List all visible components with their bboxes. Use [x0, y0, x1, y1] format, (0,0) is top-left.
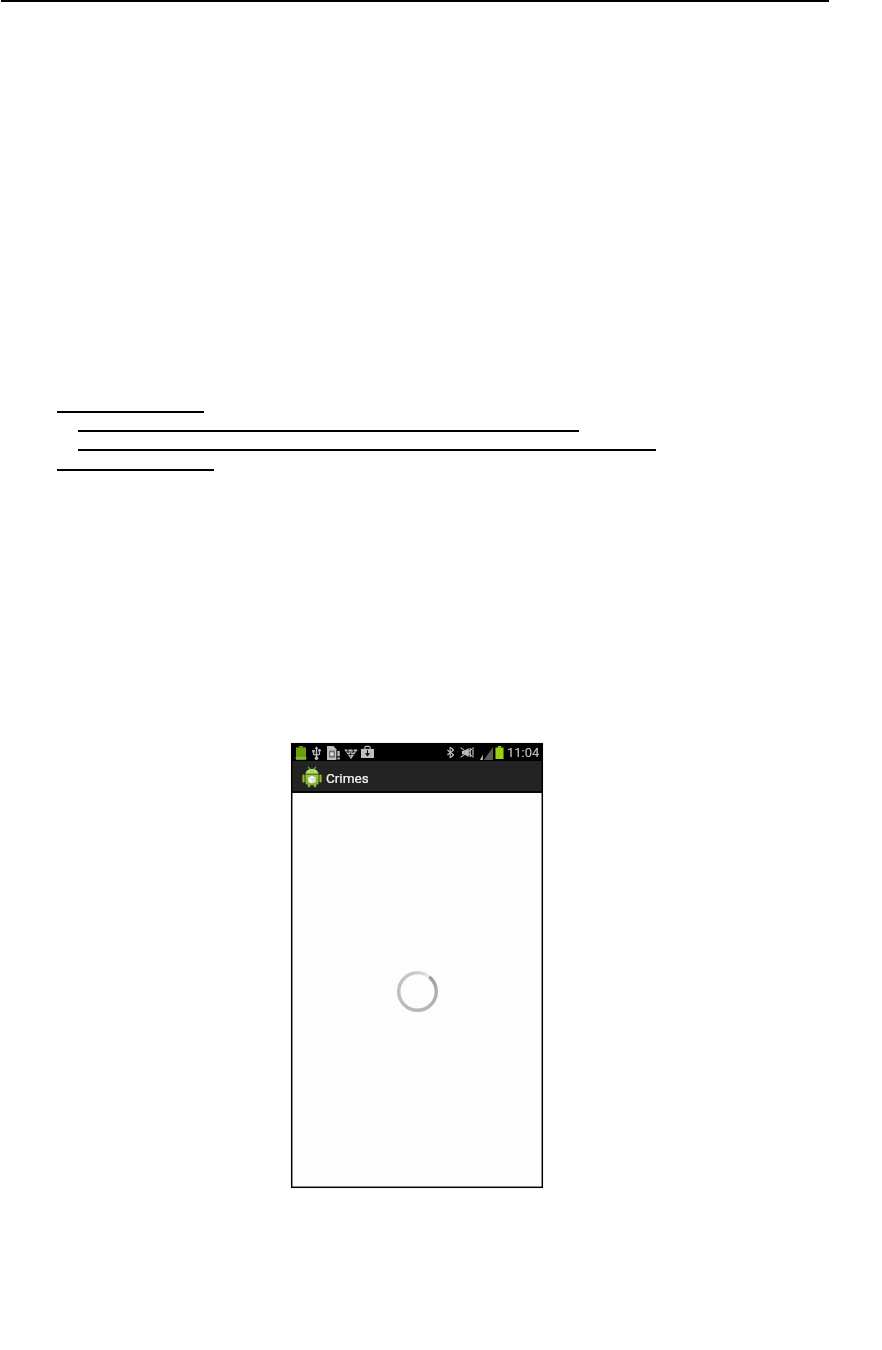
button[interactable]: Crime list, loading [291, 793, 543, 1188]
other: Crimes app icon [302, 766, 322, 789]
button[interactable]: Crimes app icon [295, 761, 365, 793]
staticText: 11:04 [507, 745, 540, 760]
staticText: Crimes [326, 770, 369, 786]
